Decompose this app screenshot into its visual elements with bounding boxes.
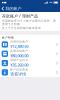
staticText: ¥35,260.00: [10, 62, 28, 67]
button[interactable]: 定期存款账户: [0, 49, 60, 58]
staticText: ¥12,480.50: [10, 44, 28, 49]
button[interactable]: Back: [0, 5, 5, 12]
staticText: 查看详情: [10, 72, 26, 77]
staticText: 本期收益率与个人账户余额均已更新，请查阅下方明细: [2, 19, 56, 26]
staticText: ¥80,000.00: [10, 53, 28, 58]
button[interactable]: 我的账户: [5, 5, 21, 12]
staticText: 我的账户: [5, 6, 21, 11]
button[interactable]: 理财产品持仓: [0, 58, 60, 68]
button[interactable]: 活期存款账户: [0, 40, 60, 49]
staticText: 存款账户 / 理财产品: [2, 13, 38, 19]
staticText: 账户明细: [2, 36, 14, 39]
button[interactable]: 账户信息查询: [0, 68, 60, 77]
staticText: 近三个月交易明细与账单查询: [2, 27, 41, 30]
staticText: 理财产品持仓: [10, 59, 28, 62]
staticText: 账户信息查询: [10, 68, 28, 71]
staticText: 活期存款账户: [10, 40, 28, 43]
staticText: 定期存款账户: [10, 49, 28, 53]
